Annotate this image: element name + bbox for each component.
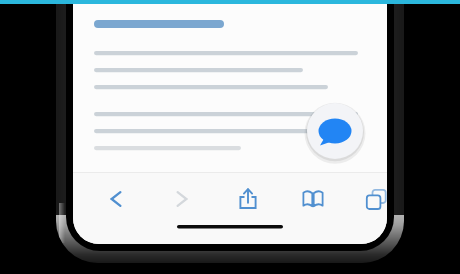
button[interactable]: New message bbox=[305, 101, 365, 161]
button[interactable]: Tabs bbox=[359, 182, 393, 216]
button[interactable]: Back bbox=[99, 182, 133, 216]
button[interactable]: Bookmarks bbox=[296, 182, 330, 216]
button[interactable]: Forward bbox=[165, 182, 199, 216]
button[interactable]: Share bbox=[231, 182, 265, 216]
